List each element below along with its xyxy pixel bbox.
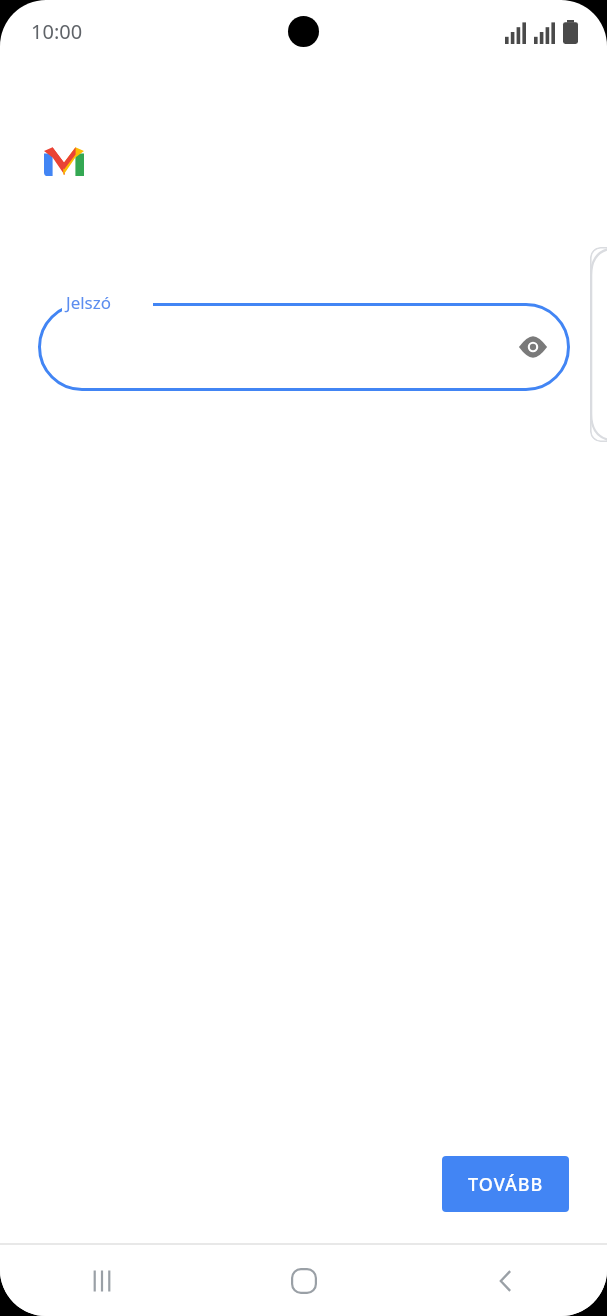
button[interactable]: Back [405,1245,607,1316]
button[interactable]: Jelszó megjelenítése [38,303,570,391]
staticText: TOVÁBB [468,1172,544,1197]
staticText: 10:00 [31,18,83,45]
staticText: Jelszó [66,291,112,314]
button[interactable]: Recents [0,1245,203,1316]
button[interactable]: TOVÁBB [442,1156,569,1212]
button[interactable]: Home [203,1245,405,1316]
button[interactable]: Jelszó megjelenítése [510,324,556,370]
